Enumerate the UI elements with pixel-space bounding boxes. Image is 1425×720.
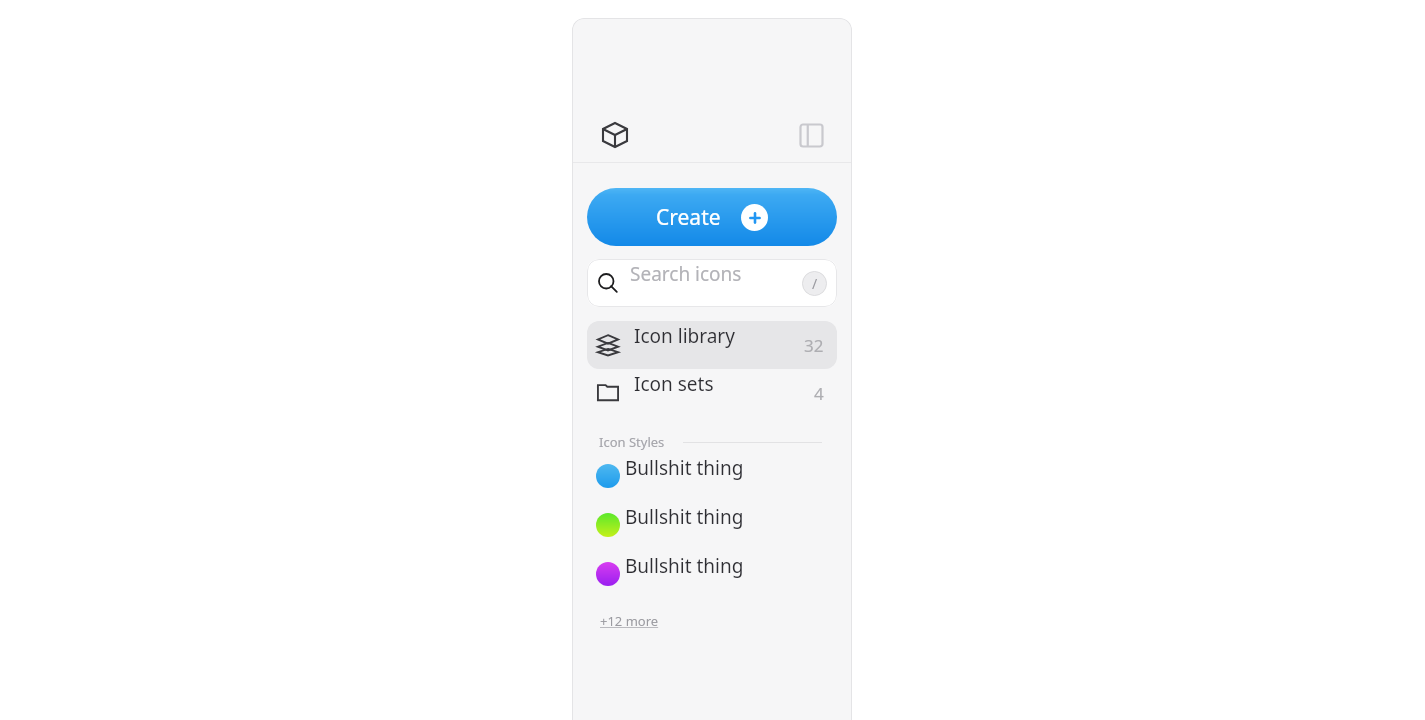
staticText: 4 <box>814 382 824 405</box>
button[interactable]: Toggle sidebar <box>796 120 826 150</box>
staticText: Icon Styles <box>599 433 665 451</box>
staticText: Bullshit thing <box>625 455 744 481</box>
staticText: Bullshit thing <box>625 553 744 579</box>
button[interactable]: Bullshit thing <box>572 549 852 598</box>
button[interactable]: Icon library <box>587 321 837 369</box>
button[interactable]: App logo <box>598 118 632 152</box>
button[interactable]: +12 more <box>600 612 659 630</box>
button[interactable]: Search icons <box>587 259 837 307</box>
button[interactable]: Bullshit thing <box>572 451 852 500</box>
staticText: Search icons <box>630 261 742 287</box>
button[interactable]: Create <box>587 188 837 246</box>
staticText: Bullshit thing <box>625 504 744 530</box>
staticText: 32 <box>804 334 824 357</box>
button[interactable]: Bullshit thing <box>572 500 852 549</box>
button[interactable]: Icon sets <box>587 369 837 417</box>
staticText: +12 more <box>600 612 659 630</box>
staticText: Icon library <box>634 323 735 349</box>
staticText: Icon sets <box>634 371 714 397</box>
staticText: / <box>812 274 818 293</box>
staticText: Create <box>656 203 721 232</box>
